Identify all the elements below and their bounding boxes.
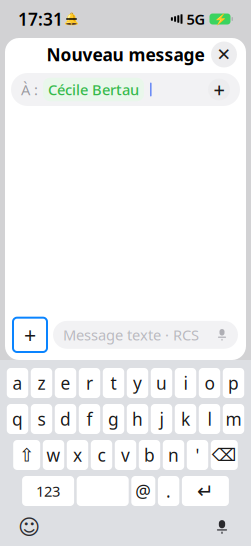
staticText: v [121,443,130,466]
staticText: Cécile Bertau [48,80,139,99]
button[interactable]: l [199,404,220,434]
staticText: x [73,443,82,466]
button[interactable]: Fermer [211,41,237,67]
button[interactable]: f [79,404,100,434]
button[interactable]: . [158,476,179,506]
staticText: m [225,407,241,430]
staticText: ⇧ [19,444,35,466]
button[interactable]: c [91,440,112,470]
button[interactable]: ' [187,440,208,470]
button[interactable]: w [43,440,64,470]
staticText: z [37,371,45,394]
staticText: a [12,371,22,394]
button[interactable]: i [175,368,196,398]
staticText: y [133,371,142,394]
button[interactable]: g [103,404,124,434]
button[interactable]: v [115,440,136,470]
button[interactable]: x [67,440,88,470]
staticText: j [159,407,163,430]
staticText: f [86,407,92,430]
button[interactable]: o [199,368,220,398]
staticText: c [97,443,105,466]
staticText: i [183,371,187,394]
button[interactable]: z [31,368,52,398]
button[interactable]: a [7,368,28,398]
staticText: w [46,443,60,466]
staticText: g [108,407,119,430]
button[interactable]: h [127,404,148,434]
staticText: ✕ [216,45,231,64]
staticText: 5G [186,9,205,29]
button[interactable]: b [139,440,160,470]
button[interactable]: n [163,440,184,470]
staticText: Message texte · RCS [63,325,199,345]
staticText: r [86,371,93,394]
button[interactable]: e [55,368,76,398]
button[interactable]: Espace [77,476,129,506]
staticText: ↵ [197,480,214,502]
staticText: q [12,407,23,430]
staticText: ⚡ [213,13,226,25]
staticText: e [60,371,70,394]
staticText: + [24,321,36,349]
button[interactable]: 123 [22,476,74,506]
staticText: À : [21,80,38,99]
staticText: . [166,479,171,502]
staticText: n [168,443,179,466]
staticText: ' [195,443,199,466]
staticText: d [60,407,71,430]
staticText: ☺ [18,515,40,539]
staticText: l [207,407,211,430]
staticText: h [132,407,143,430]
staticText: p [228,371,239,394]
staticText: k [181,407,190,430]
staticText: t [110,371,116,394]
staticText: o [204,371,214,394]
button[interactable]: t [103,368,124,398]
staticText: + [213,76,224,103]
staticText: @ [135,479,151,502]
button[interactable]: Ajouter une pièce jointe [13,318,47,352]
button[interactable]: q [7,404,28,434]
staticText: 123 [36,481,60,501]
button[interactable]: Supprimer [211,440,238,470]
staticText: s [37,407,45,430]
button[interactable]: r [79,368,100,398]
button[interactable]: @ [131,476,155,506]
button[interactable]: Retour [182,476,229,506]
button[interactable]: y [127,368,148,398]
staticText: 🔔 [64,12,79,26]
staticText: ⌫ [212,445,237,465]
staticText: u [156,371,167,394]
staticText: Nouveau message [46,43,204,66]
button[interactable]: Emoji [16,514,42,540]
button[interactable]: k [175,404,196,434]
button[interactable]: u [151,368,172,398]
button[interactable]: s [31,404,52,434]
button[interactable]: m [223,404,244,434]
staticText: b [144,443,155,466]
button[interactable]: p [223,368,244,398]
button[interactable]: Majuscule [13,440,40,470]
button[interactable]: Dictée [209,514,235,540]
staticText: 17:31 [18,7,63,30]
button[interactable]: j [151,404,172,434]
button[interactable]: d [55,404,76,434]
button[interactable]: Ajouter un contact [208,76,230,103]
